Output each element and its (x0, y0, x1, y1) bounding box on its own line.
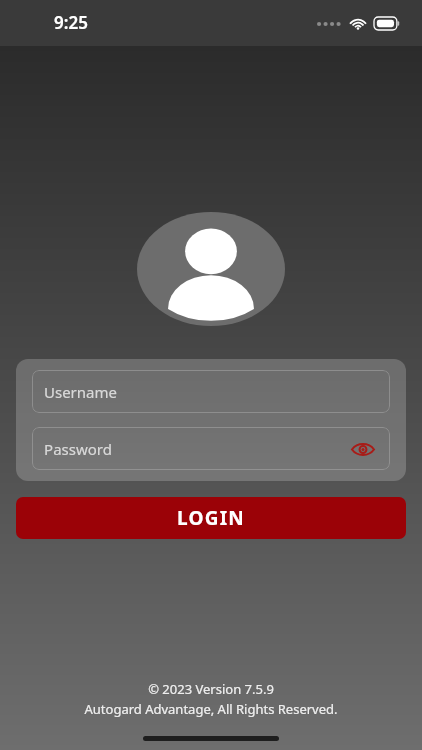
button[interactable]: LOGIN (16, 497, 406, 539)
staticText: LOGIN (177, 505, 245, 531)
staticText: © 2023 Version 7.5.9 (148, 680, 274, 698)
button[interactable]: Show password (348, 434, 378, 464)
button[interactable]: Username (32, 370, 390, 413)
staticText: Password (44, 439, 112, 459)
button[interactable]: Password (32, 427, 390, 470)
staticText: Username (44, 382, 117, 402)
staticText: 9:25 (54, 11, 88, 34)
other: User avatar (137, 212, 285, 326)
staticText: Autogard Advantage, All Rights Reserved. (84, 700, 338, 718)
